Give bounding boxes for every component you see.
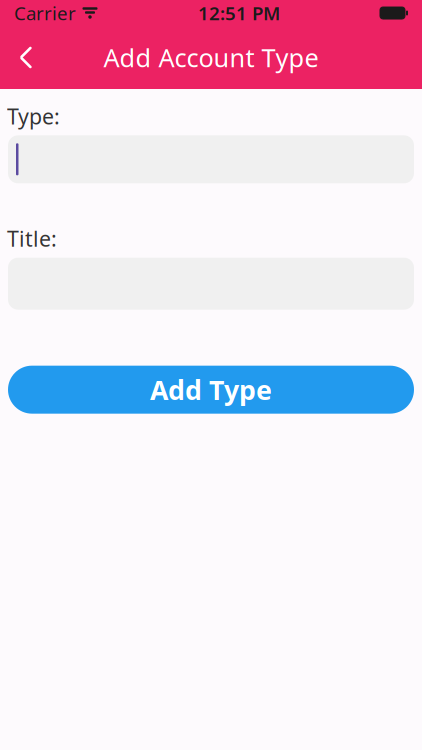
staticText: Add Account Type <box>103 41 318 74</box>
staticText: 12:51 PM <box>198 1 280 25</box>
staticText: Add Type <box>150 372 272 407</box>
staticText: Title: <box>7 224 57 253</box>
staticText: Carrier <box>14 1 76 25</box>
button[interactable]: Back <box>0 35 52 79</box>
staticText: Type: <box>7 102 60 130</box>
button[interactable]: Add Type <box>8 366 414 414</box>
